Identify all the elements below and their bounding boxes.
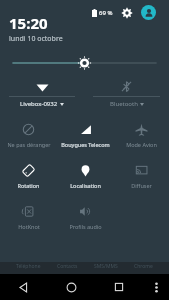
button[interactable]: Brightness bbox=[0, 52, 169, 74]
staticText: Bouygues Telecom bbox=[61, 141, 110, 148]
staticText: Contacts bbox=[57, 263, 78, 270]
button[interactable]: Wi-Fi bbox=[9, 78, 75, 116]
staticText: Livebox-0932 bbox=[20, 100, 58, 108]
staticText: Localisation bbox=[70, 182, 101, 189]
button[interactable]: User profile bbox=[141, 5, 156, 20]
button[interactable]: Bouygues Telecom bbox=[59, 119, 111, 157]
button[interactable]: Home bbox=[47, 274, 95, 300]
staticText: Chrome bbox=[134, 263, 153, 270]
staticText: lundi 10 octobre bbox=[9, 34, 63, 44]
button[interactable]: Profils audio bbox=[59, 201, 111, 239]
staticText: SMS/MMS bbox=[94, 263, 118, 270]
staticText: Bluetooth bbox=[110, 100, 138, 108]
staticText: 69 % bbox=[99, 9, 113, 17]
button[interactable]: Bluetooth bbox=[93, 78, 160, 116]
staticText: Diffuser bbox=[131, 182, 152, 189]
button[interactable]: Mode Avion bbox=[115, 119, 167, 157]
button[interactable]: Localisation bbox=[59, 160, 111, 198]
staticText: Rotation automatique bbox=[2, 182, 55, 189]
button[interactable]: Ne pas déranger bbox=[2, 119, 55, 157]
button[interactable]: Diffuser bbox=[115, 160, 167, 198]
button[interactable]: HotKnot bbox=[2, 201, 55, 239]
staticText: HotKnot bbox=[18, 223, 40, 230]
staticText: 15:20 bbox=[9, 13, 48, 33]
staticText: Ne pas déranger bbox=[7, 141, 51, 148]
staticText: Téléphone bbox=[16, 263, 41, 270]
staticText: Mode Avion bbox=[126, 141, 157, 148]
button[interactable]: Settings bbox=[120, 6, 134, 20]
button[interactable]: More options bbox=[143, 274, 169, 300]
button[interactable]: Recent apps bbox=[95, 274, 143, 300]
staticText: Profils audio bbox=[69, 223, 102, 230]
button[interactable]: Back bbox=[0, 274, 47, 300]
button[interactable]: Rotation automatique bbox=[2, 160, 55, 198]
